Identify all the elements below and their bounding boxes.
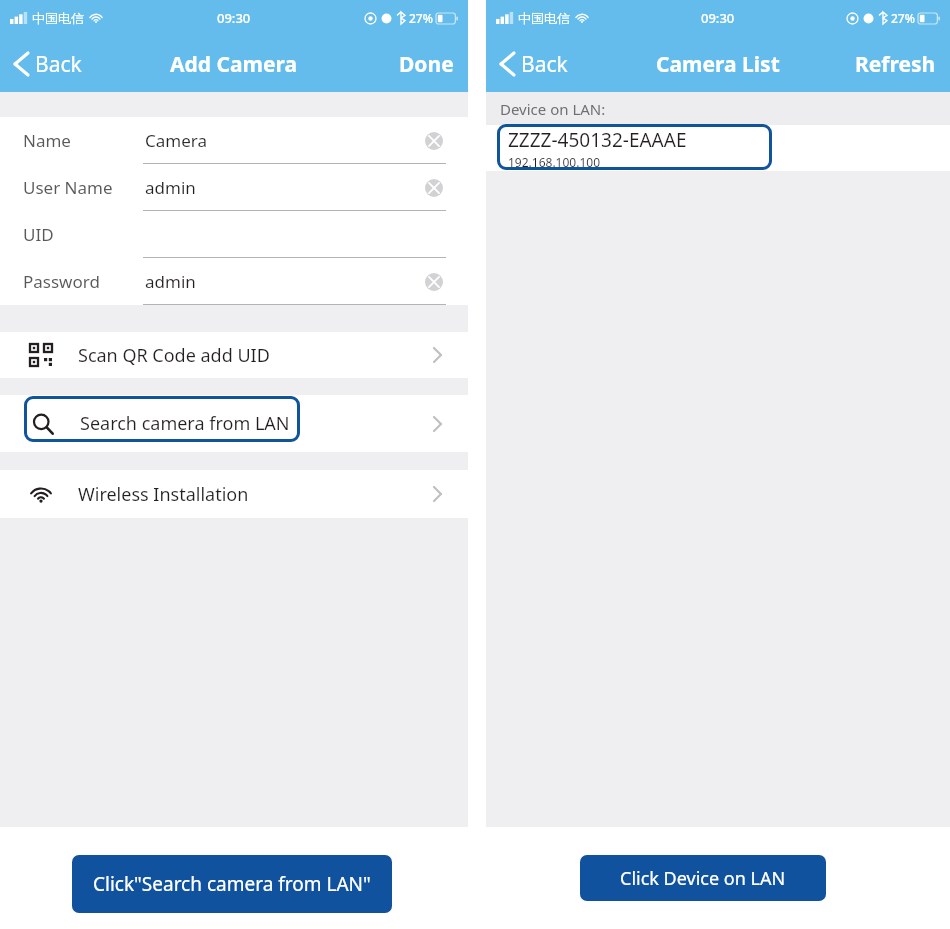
- button[interactable]: Search camera from LAN: [0, 395, 468, 452]
- staticText: Camera: [145, 129, 207, 152]
- staticText: 中国电信: [518, 10, 570, 26]
- staticText: Camera List: [656, 50, 780, 79]
- staticText: User Name: [23, 176, 113, 199]
- staticText: admin: [145, 270, 196, 293]
- staticText: Device on LAN:: [500, 99, 606, 119]
- staticText: 09:30: [701, 9, 735, 27]
- button[interactable]: Click Device on LAN: [580, 855, 826, 901]
- button[interactable]: Clear User Name: [422, 176, 446, 200]
- button[interactable]: Wireless Installation: [0, 470, 468, 518]
- staticText: admin: [145, 176, 196, 199]
- button[interactable]: Scan QR Code add UID: [0, 332, 468, 378]
- staticText: Add Camera: [170, 50, 298, 79]
- button[interactable]: Done: [399, 36, 454, 92]
- staticText: 27%: [409, 10, 433, 26]
- staticText: UID: [23, 223, 54, 246]
- staticText: 27%: [891, 10, 915, 26]
- staticText: 中国电信: [32, 10, 84, 26]
- staticText: Wireless Installation: [78, 482, 249, 507]
- button[interactable]: ZZZZ-450132-EAAAE: [508, 125, 950, 171]
- staticText: 09:30: [217, 9, 251, 27]
- button[interactable]: Click"Search camera from LAN": [72, 855, 392, 913]
- staticText: Done: [399, 50, 454, 79]
- staticText: Scan QR Code add UID: [78, 343, 270, 368]
- staticText: Refresh: [855, 50, 936, 79]
- staticText: Click Device on LAN: [620, 866, 786, 891]
- staticText: Back: [521, 50, 568, 79]
- staticText: Search camera from LAN: [80, 411, 290, 436]
- staticText: Back: [35, 50, 82, 79]
- button[interactable]: Back: [14, 36, 82, 92]
- staticText: Name: [23, 129, 71, 152]
- button[interactable]: Clear Password: [422, 270, 446, 294]
- staticText: Password: [23, 270, 100, 293]
- staticText: ZZZZ-450132-EAAAE: [508, 127, 687, 153]
- staticText: 192.168.100.100: [508, 154, 601, 170]
- staticText: Click"Search camera from LAN": [93, 871, 371, 897]
- button[interactable]: Back: [500, 36, 568, 92]
- button[interactable]: Clear Name: [422, 129, 446, 153]
- button[interactable]: Refresh: [855, 36, 936, 92]
